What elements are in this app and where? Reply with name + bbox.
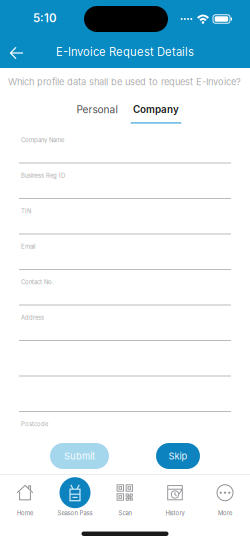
staticText: Scan (118, 510, 131, 517)
button[interactable]: History (150, 475, 200, 520)
staticText: Postcode (21, 420, 48, 428)
staticText: Email (21, 243, 35, 250)
staticText: Season Pass (57, 510, 92, 517)
button[interactable]: Season Pass (50, 475, 100, 520)
staticText: Address (21, 314, 44, 321)
staticText: E-Invoice Request Details (56, 45, 194, 59)
staticText: Contact No. (21, 278, 54, 286)
button[interactable]: Home (0, 475, 50, 520)
button[interactable]: More (200, 475, 250, 520)
button[interactable]: Submit (50, 443, 109, 469)
staticText: TIN (21, 207, 31, 215)
staticText: History (165, 510, 184, 517)
staticText: Company (133, 103, 179, 115)
staticText: Skip (168, 450, 187, 462)
staticText: Personal (76, 103, 117, 116)
staticText: Business Reg ID (21, 172, 65, 179)
staticText: Which profile data shall be used to requ… (8, 76, 241, 88)
staticText: Submit (64, 450, 95, 462)
staticText: 5:10 (33, 11, 57, 25)
button[interactable]: Company (128, 101, 184, 124)
button[interactable]: Skip (156, 443, 200, 469)
staticText: More (218, 510, 232, 517)
button[interactable]: Back (4, 40, 30, 66)
button[interactable]: Personal (69, 101, 125, 124)
staticText: Company Name (21, 136, 64, 144)
staticText: Home (17, 510, 33, 517)
button[interactable]: Scan (100, 475, 150, 520)
